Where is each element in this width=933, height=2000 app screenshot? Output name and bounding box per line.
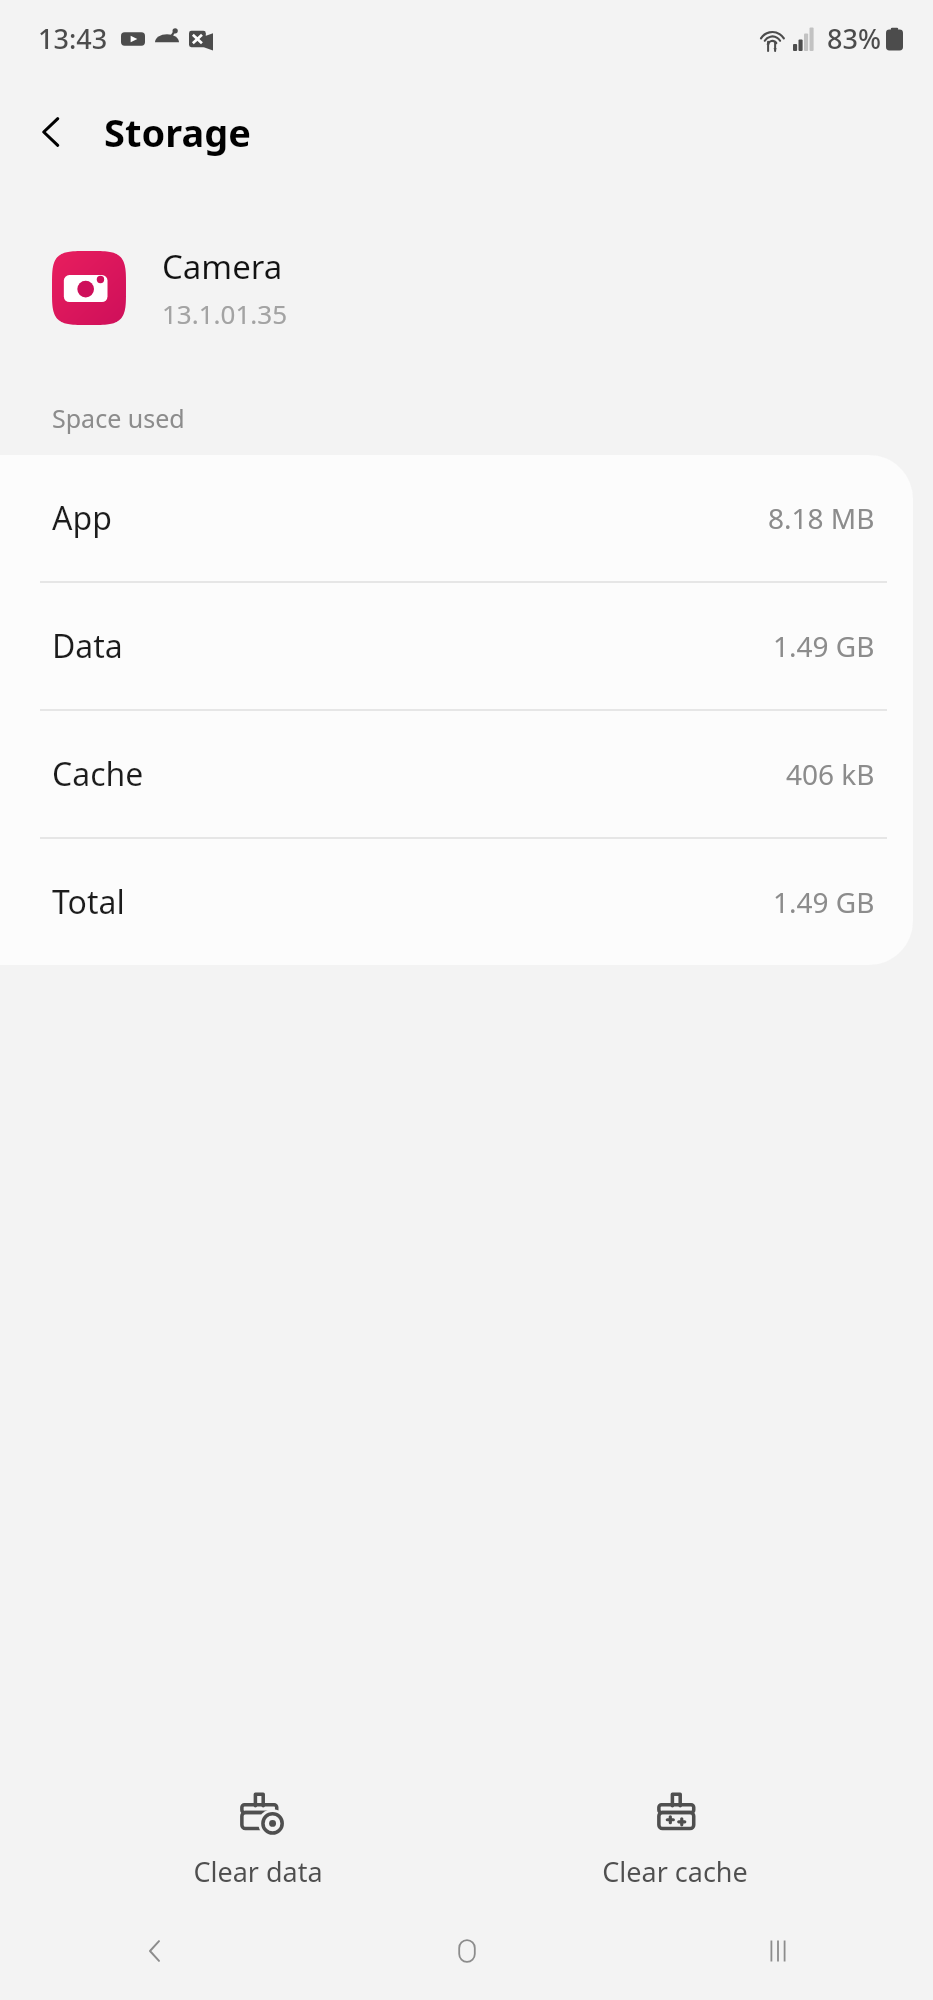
button[interactable]: Clear cache [515,1777,835,1900]
staticText: 83% [827,20,881,57]
staticText: Cache [52,752,144,796]
staticText: 1.49 GB [773,883,875,921]
button[interactable]: Back [16,96,88,168]
staticText: Clear data [193,1853,323,1890]
staticText: Clear cache [602,1853,748,1890]
staticText: Camera [162,244,283,289]
staticText: Total [52,880,125,924]
staticText: 13.1.01.35 [162,296,288,331]
staticText: App [52,496,112,540]
staticText: 406 kB [786,755,875,793]
button[interactable]: Total [0,839,913,965]
staticText: 13:43 [38,20,108,57]
staticText: 1.49 GB [773,627,875,665]
button[interactable]: Cache [0,711,913,839]
staticText: Data [52,624,123,668]
button[interactable]: App [0,455,913,583]
button[interactable]: Recents [622,1902,933,2000]
button[interactable]: Data [0,583,913,711]
button[interactable]: Back [0,1902,311,2000]
staticText: Space used [52,401,185,435]
button[interactable]: Clear data [98,1777,418,1900]
staticText: 8.18 MB [768,499,875,537]
button[interactable]: Home [311,1902,622,2000]
staticText: Storage [104,106,251,158]
